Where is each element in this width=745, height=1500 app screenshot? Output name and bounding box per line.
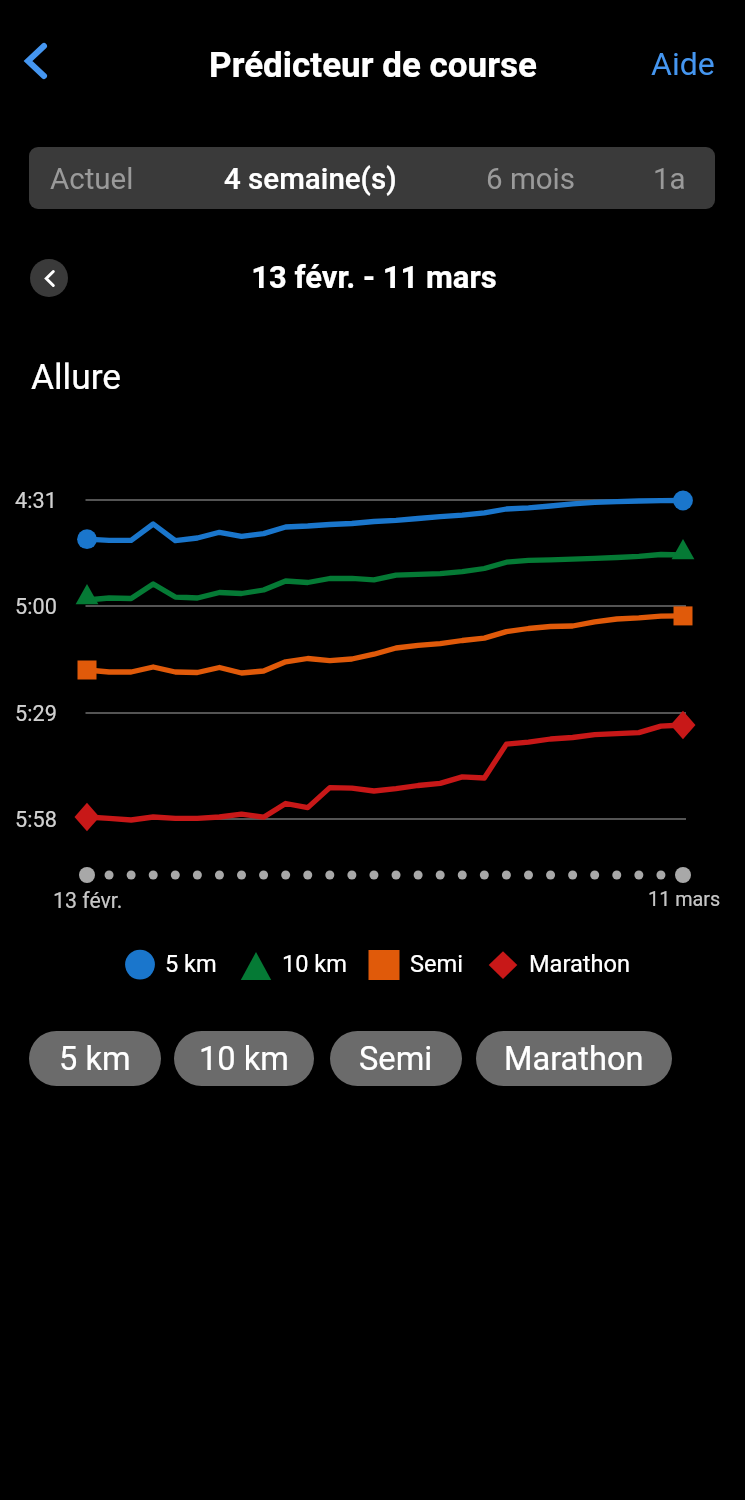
staticText: 4 semaine(s) (224, 162, 397, 197)
staticText: 13 févr. (53, 888, 123, 913)
staticText: Marathon (529, 950, 630, 978)
staticText: Allure (31, 356, 122, 397)
button[interactable]: 1a (539, 148, 745, 210)
button[interactable]: 10 km (239, 946, 338, 984)
staticText: 13 févr. - 11 mars (251, 259, 497, 295)
staticText: Semi (410, 950, 463, 978)
staticText: 5 km (59, 1040, 131, 1078)
button[interactable]: 6 mois (400, 148, 660, 210)
button[interactable]: Semi (367, 946, 460, 984)
button[interactable]: 4 semaine(s) (180, 148, 440, 210)
staticText: 10 km (282, 950, 348, 978)
button[interactable]: Marathon (476, 1031, 672, 1086)
button[interactable]: Marathon (486, 946, 621, 984)
staticText: Semi (359, 1040, 433, 1078)
button[interactable]: Aide (637, 32, 729, 96)
staticText: Aide (651, 45, 715, 83)
staticText: Marathon (504, 1040, 644, 1078)
staticText: Prédicteur de course (209, 45, 537, 86)
staticText: Actuel (50, 162, 134, 197)
staticText: 5:29 (15, 701, 57, 726)
staticText: 5 km (165, 950, 217, 978)
staticText: 5:58 (15, 807, 57, 832)
staticText: 10 km (199, 1040, 289, 1078)
staticText: 6 mois (486, 162, 575, 197)
button[interactable]: Actuel (0, 148, 222, 210)
staticText: 1a (653, 162, 686, 197)
button[interactable]: Back (6, 31, 66, 91)
button[interactable]: 5 km (123, 946, 213, 984)
button[interactable]: 5 km (29, 1031, 161, 1086)
button[interactable]: Semi (330, 1031, 462, 1086)
staticText: 4:31 (15, 488, 57, 513)
staticText: 11 mars (648, 888, 721, 911)
staticText: 5:00 (15, 594, 57, 619)
button[interactable]: 10 km (174, 1031, 314, 1086)
button[interactable]: Previous period (30, 259, 68, 297)
